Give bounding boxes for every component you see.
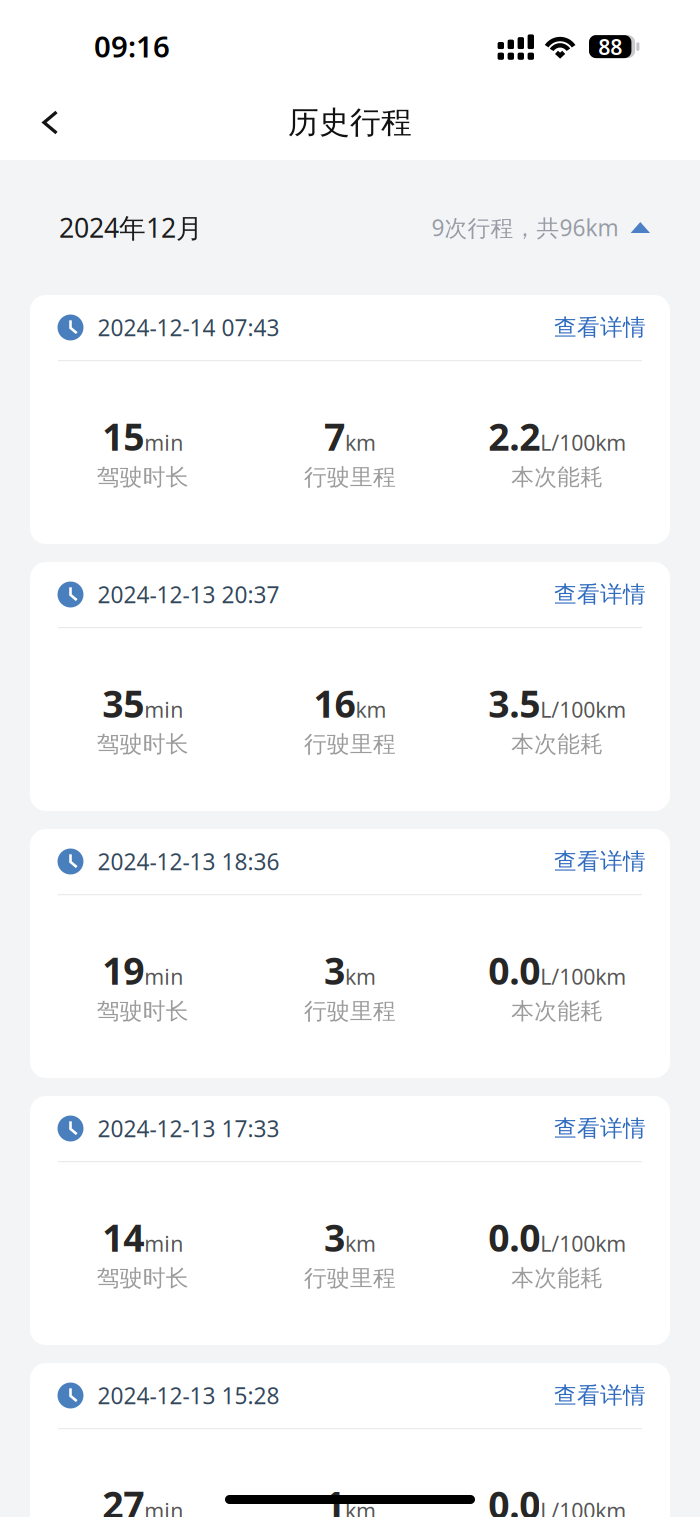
staticText: 查看详情	[554, 1115, 646, 1142]
staticText: 0.0	[488, 945, 540, 995]
button[interactable]: 查看详情	[554, 1115, 646, 1142]
staticText: 本次能耗	[511, 997, 603, 1025]
staticText: 历史行程	[288, 104, 412, 141]
staticText: 行驶里程	[304, 1264, 396, 1292]
staticText: 本次能耗	[511, 1264, 603, 1292]
staticText: 15	[102, 411, 144, 461]
staticText: 查看详情	[554, 1382, 646, 1409]
staticText: 本次能耗	[511, 730, 603, 758]
staticText: L/100km	[540, 695, 626, 723]
staticText: 09:16	[94, 26, 170, 65]
staticText: 驾驶时长	[97, 730, 189, 758]
staticText: 3.5	[488, 678, 540, 728]
staticText: 1	[324, 1479, 345, 1517]
staticText: 16	[313, 678, 355, 728]
staticText: 0.0	[488, 1212, 540, 1262]
staticText: 7	[324, 411, 345, 461]
staticText: L/100km	[540, 1496, 626, 1517]
staticText: 2.2	[488, 411, 540, 461]
staticText: km	[345, 1229, 376, 1257]
staticText: 19	[102, 945, 144, 995]
staticText: km	[345, 1496, 376, 1517]
staticText: 14	[102, 1212, 144, 1262]
staticText: 3	[324, 945, 345, 995]
staticText: 2024-12-13 20:37	[97, 579, 279, 609]
staticText: min	[144, 428, 183, 456]
staticText: 驾驶时长	[97, 1264, 189, 1292]
staticText: km	[355, 695, 386, 723]
button[interactable]: 查看详情	[554, 848, 646, 875]
staticText: min	[144, 1229, 183, 1257]
staticText: 2024-12-13 17:33	[97, 1113, 279, 1143]
button[interactable]: 查看详情	[554, 1382, 646, 1409]
staticText: 35	[102, 678, 144, 728]
staticText: min	[144, 695, 183, 723]
staticText: 查看详情	[554, 848, 646, 875]
staticText: 27	[102, 1479, 144, 1517]
button[interactable]: 查看详情	[554, 581, 646, 608]
staticText: 驾驶时长	[97, 997, 189, 1025]
staticText: L/100km	[540, 962, 626, 990]
button[interactable]: 查看详情	[554, 314, 646, 341]
staticText: 查看详情	[554, 314, 646, 341]
staticText: 行驶里程	[304, 463, 396, 491]
staticText: 2024-12-14 07:43	[97, 312, 279, 342]
staticText: 2024-12-13 15:28	[97, 1380, 279, 1410]
staticText: 行驶里程	[304, 730, 396, 758]
staticText: km	[345, 962, 376, 990]
button[interactable]: Back	[0, 93, 84, 151]
staticText: 88	[598, 32, 622, 61]
staticText: km	[345, 428, 376, 456]
staticText: 0.0	[488, 1479, 540, 1517]
staticText: 查看详情	[554, 581, 646, 608]
staticText: min	[144, 1496, 183, 1517]
staticText: 本次能耗	[511, 463, 603, 491]
staticText: 3	[324, 1212, 345, 1262]
staticText: L/100km	[540, 428, 626, 456]
staticText: 行驶里程	[304, 997, 396, 1025]
staticText: 2024年12月	[59, 210, 203, 245]
staticText: 驾驶时长	[97, 463, 189, 491]
staticText: L/100km	[540, 1229, 626, 1257]
staticText: 9次行程，共96km	[432, 212, 619, 242]
staticText: 2024-12-13 18:36	[97, 846, 279, 876]
button[interactable]: 9次行程，共96km	[432, 212, 650, 242]
staticText: min	[144, 962, 183, 990]
